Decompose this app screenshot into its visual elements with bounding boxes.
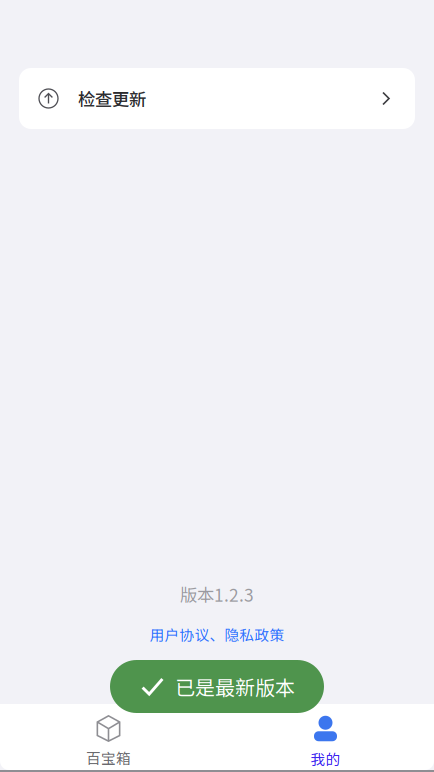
button[interactable]: 我的 bbox=[217, 704, 434, 770]
button[interactable]: 百宝箱 bbox=[0, 704, 217, 770]
staticText: 检查更新 bbox=[78, 86, 146, 111]
button[interactable]: 已是最新版本 bbox=[110, 660, 324, 713]
button[interactable]: 用户协议、隐私政策 bbox=[143, 607, 290, 645]
staticText: 我的 bbox=[310, 748, 340, 769]
staticText: 已是最新版本 bbox=[175, 672, 295, 701]
staticText: 用户协议、隐私政策 bbox=[149, 624, 284, 645]
staticText: 版本1.2.3 bbox=[180, 582, 254, 607]
button[interactable]: 检查更新 bbox=[19, 68, 415, 129]
staticText: 百宝箱 bbox=[86, 747, 131, 768]
